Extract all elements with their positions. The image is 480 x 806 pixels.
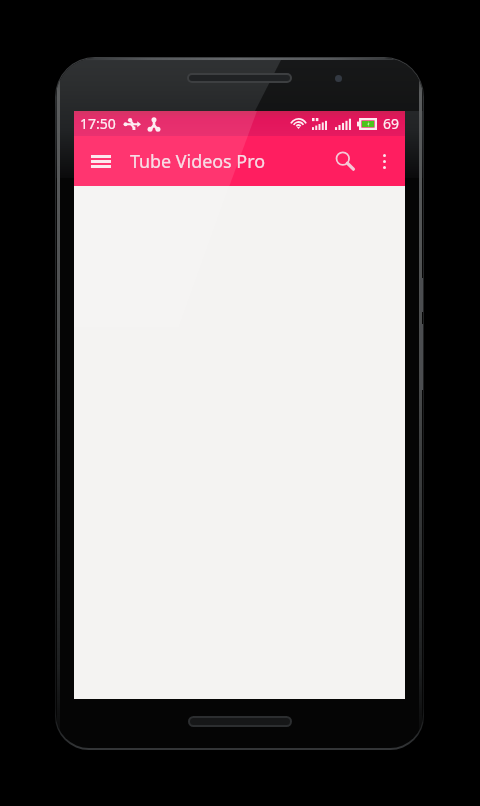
- button[interactable]: More options: [366, 136, 402, 186]
- staticText: 17:50: [80, 114, 116, 133]
- button[interactable]: Open navigation drawer: [82, 136, 120, 186]
- button[interactable]: Search: [325, 136, 365, 186]
- staticText: Tube Videos Pro: [130, 149, 266, 173]
- staticText: 69: [383, 114, 400, 133]
